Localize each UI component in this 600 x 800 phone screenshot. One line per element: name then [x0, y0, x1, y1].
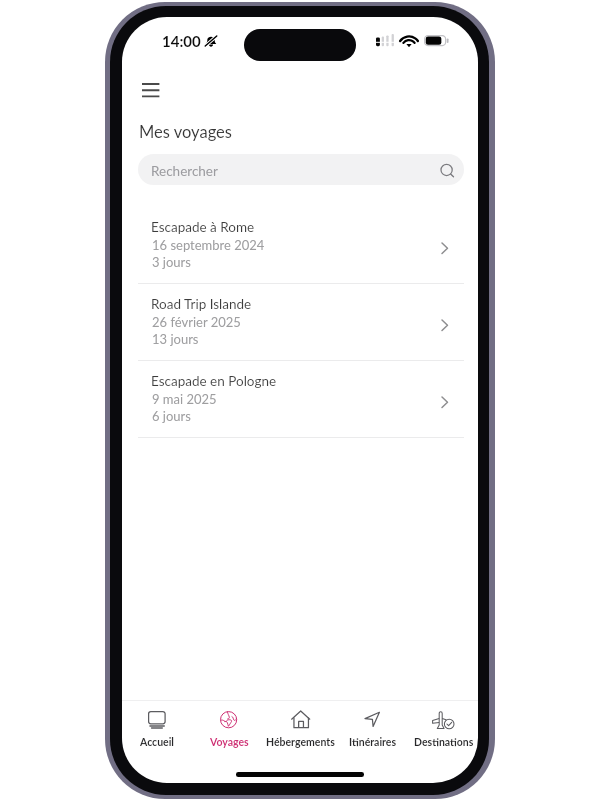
staticText: 13 jours	[152, 331, 199, 347]
staticText: Itinéraires	[349, 736, 397, 749]
staticText: Voyages	[210, 736, 249, 749]
staticText: Hébergements	[266, 736, 335, 749]
staticText: Road Trip Islande	[151, 296, 252, 312]
button[interactable]: Voyages	[193, 705, 264, 761]
staticText: 3 jours	[152, 254, 191, 270]
button[interactable]: Accueil	[122, 705, 192, 761]
staticText: 26 février 2025	[152, 314, 241, 330]
staticText: Accueil	[140, 736, 174, 749]
button[interactable]: Road Trip Islande	[122, 291, 478, 368]
staticText: 6 jours	[152, 408, 191, 424]
button[interactable]: Escapade à Rome	[122, 214, 478, 291]
staticText: 16 septembre 2024	[152, 237, 265, 253]
button[interactable]: Menu	[132, 72, 169, 108]
staticText: Escapade en Pologne	[151, 373, 277, 389]
button[interactable]: Itinéraires	[336, 705, 407, 761]
staticText: Mes voyages	[139, 122, 232, 142]
staticText: Escapade à Rome	[151, 219, 255, 235]
staticText: Rechercher	[151, 163, 218, 179]
staticText: Destinations	[414, 736, 474, 749]
button[interactable]: Escapade en Pologne	[122, 368, 478, 445]
button[interactable]: Rechercher	[138, 154, 464, 185]
button[interactable]: Destinations	[407, 705, 478, 761]
staticText: 14:00	[162, 32, 201, 50]
button[interactable]: Hébergements	[264, 705, 335, 761]
staticText: 9 mai 2025	[152, 391, 217, 407]
